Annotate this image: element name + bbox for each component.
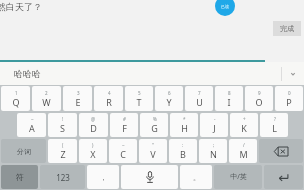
- staticText: Y: [166, 96, 172, 108]
- staticText: #: [123, 116, 126, 122]
- button[interactable]: 4: [94, 86, 123, 111]
- staticText: Z: [60, 148, 66, 160]
- staticText: +: [243, 116, 246, 122]
- staticText: ): [92, 142, 94, 148]
- staticText: 3: [77, 90, 80, 96]
- staticText: G: [151, 122, 158, 134]
- button[interactable]: *: [170, 113, 198, 137]
- staticText: 5: [138, 90, 141, 96]
- staticText: F: [122, 122, 127, 134]
- button[interactable]: 哈哈哈: [0, 62, 281, 85]
- button[interactable]: !: [48, 113, 77, 137]
- button[interactable]: Avatar: [215, 0, 235, 16]
- staticText: ，: [100, 173, 107, 182]
- staticText: P: [286, 96, 292, 108]
- staticText: 2: [45, 90, 48, 96]
- staticText: !: [62, 116, 64, 122]
- staticText: C: [120, 148, 126, 160]
- button[interactable]: Backspace: [259, 139, 303, 163]
- button[interactable]: 1: [1, 86, 30, 111]
- staticText: S: [60, 122, 65, 134]
- staticText: @: [91, 116, 96, 122]
- staticText: K: [241, 122, 247, 134]
- button[interactable]: 123: [40, 165, 85, 189]
- button[interactable]: 中/英: [214, 165, 262, 189]
- button[interactable]: Enter: [264, 165, 303, 189]
- button[interactable]: 2: [32, 86, 61, 111]
- staticText: W: [42, 96, 51, 108]
- staticText: U: [196, 96, 203, 108]
- button[interactable]: 。: [180, 165, 212, 189]
- staticText: I: [227, 96, 231, 108]
- button[interactable]: 3: [63, 86, 92, 111]
- button[interactable]: ，: [87, 165, 119, 189]
- staticText: T: [136, 96, 142, 108]
- button[interactable]: ~: [17, 113, 46, 137]
- staticText: ?: [274, 116, 276, 122]
- button[interactable]: (: [48, 139, 77, 163]
- staticText: 符: [16, 172, 24, 182]
- staticText: N: [210, 148, 217, 160]
- button[interactable]: ": [139, 139, 167, 163]
- staticText: 1: [15, 90, 18, 96]
- staticText: -: [214, 116, 216, 122]
- staticText: 8: [228, 90, 231, 96]
- staticText: 己读: [221, 4, 229, 9]
- button[interactable]: Voice input: [121, 165, 178, 189]
- staticText: X: [90, 148, 96, 160]
- staticText: 0: [288, 90, 291, 96]
- button[interactable]: 8: [215, 86, 243, 111]
- button[interactable]: 6: [155, 86, 183, 111]
- staticText: B: [180, 148, 186, 160]
- staticText: D: [90, 122, 97, 134]
- staticText: ": [152, 142, 154, 148]
- staticText: 哈哈哈: [14, 68, 41, 79]
- button[interactable]: ): [79, 139, 107, 163]
- button[interactable]: #: [110, 113, 138, 137]
- button[interactable]: 5: [125, 86, 153, 111]
- button[interactable]: ~: [109, 139, 137, 163]
- staticText: 然白天了？: [0, 1, 42, 12]
- button[interactable]: Expand candidates: [282, 62, 304, 85]
- staticText: R: [106, 96, 112, 108]
- staticText: ~: [31, 116, 34, 122]
- button[interactable]: 分词: [1, 139, 46, 163]
- button[interactable]: %: [140, 113, 168, 137]
- button[interactable]: 7: [185, 86, 213, 111]
- button[interactable]: @: [79, 113, 108, 137]
- button[interactable]: 0: [275, 86, 303, 111]
- staticText: H: [181, 122, 188, 134]
- button[interactable]: +: [230, 113, 258, 137]
- staticText: 中/英: [230, 172, 247, 182]
- staticText: 。: [193, 173, 200, 182]
- staticText: J: [213, 122, 216, 134]
- staticText: L: [272, 122, 277, 134]
- button[interactable]: /: [229, 139, 257, 163]
- staticText: ;: [213, 142, 215, 148]
- staticText: %: [153, 116, 157, 122]
- button[interactable]: 完成: [273, 21, 301, 36]
- button[interactable]: -: [200, 113, 228, 137]
- staticText: O: [255, 96, 263, 108]
- button[interactable]: 符: [1, 165, 38, 189]
- staticText: 分词: [17, 147, 31, 156]
- staticText: ~: [122, 142, 125, 148]
- staticText: 7: [198, 90, 201, 96]
- staticText: *: [183, 116, 186, 122]
- staticText: :: [182, 142, 184, 148]
- staticText: 4: [108, 90, 111, 96]
- staticText: A: [29, 122, 35, 134]
- staticText: (: [62, 142, 64, 148]
- button[interactable]: 9: [245, 86, 273, 111]
- button[interactable]: ;: [199, 139, 227, 163]
- button[interactable]: ?: [260, 113, 288, 137]
- staticText: 9: [258, 90, 261, 96]
- staticText: 完成: [280, 24, 294, 33]
- staticText: Q: [12, 96, 20, 108]
- staticText: M: [239, 148, 248, 160]
- staticText: 123: [56, 172, 70, 183]
- staticText: E: [75, 96, 81, 108]
- staticText: /: [243, 142, 245, 148]
- button[interactable]: :: [169, 139, 197, 163]
- staticText: 6: [168, 90, 171, 96]
